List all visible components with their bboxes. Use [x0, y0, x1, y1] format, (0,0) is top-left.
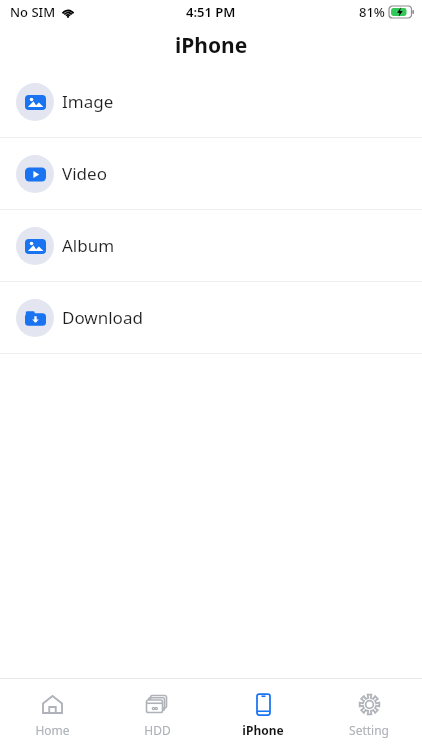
staticText: iPhone: [242, 722, 284, 738]
button[interactable]: Download: [0, 282, 422, 353]
staticText: HDD: [144, 722, 171, 738]
button[interactable]: Video: [0, 138, 422, 209]
button[interactable]: iPhone: [210, 679, 316, 750]
staticText: Setting: [349, 722, 389, 738]
button[interactable]: Home: [0, 679, 105, 750]
staticText: 81%: [359, 3, 385, 21]
staticText: Image: [62, 90, 114, 113]
staticText: Download: [62, 306, 143, 329]
button[interactable]: Setting: [316, 679, 422, 750]
staticText: iPhone: [175, 31, 248, 60]
button[interactable]: HDD: [105, 679, 210, 750]
button[interactable]: Album: [0, 210, 422, 281]
staticText: Video: [62, 162, 107, 185]
button[interactable]: Image: [0, 66, 422, 137]
staticText: Home: [35, 722, 70, 738]
staticText: Album: [62, 234, 115, 257]
staticText: No SIM: [10, 3, 56, 21]
staticText: 4:51 PM: [186, 3, 236, 21]
